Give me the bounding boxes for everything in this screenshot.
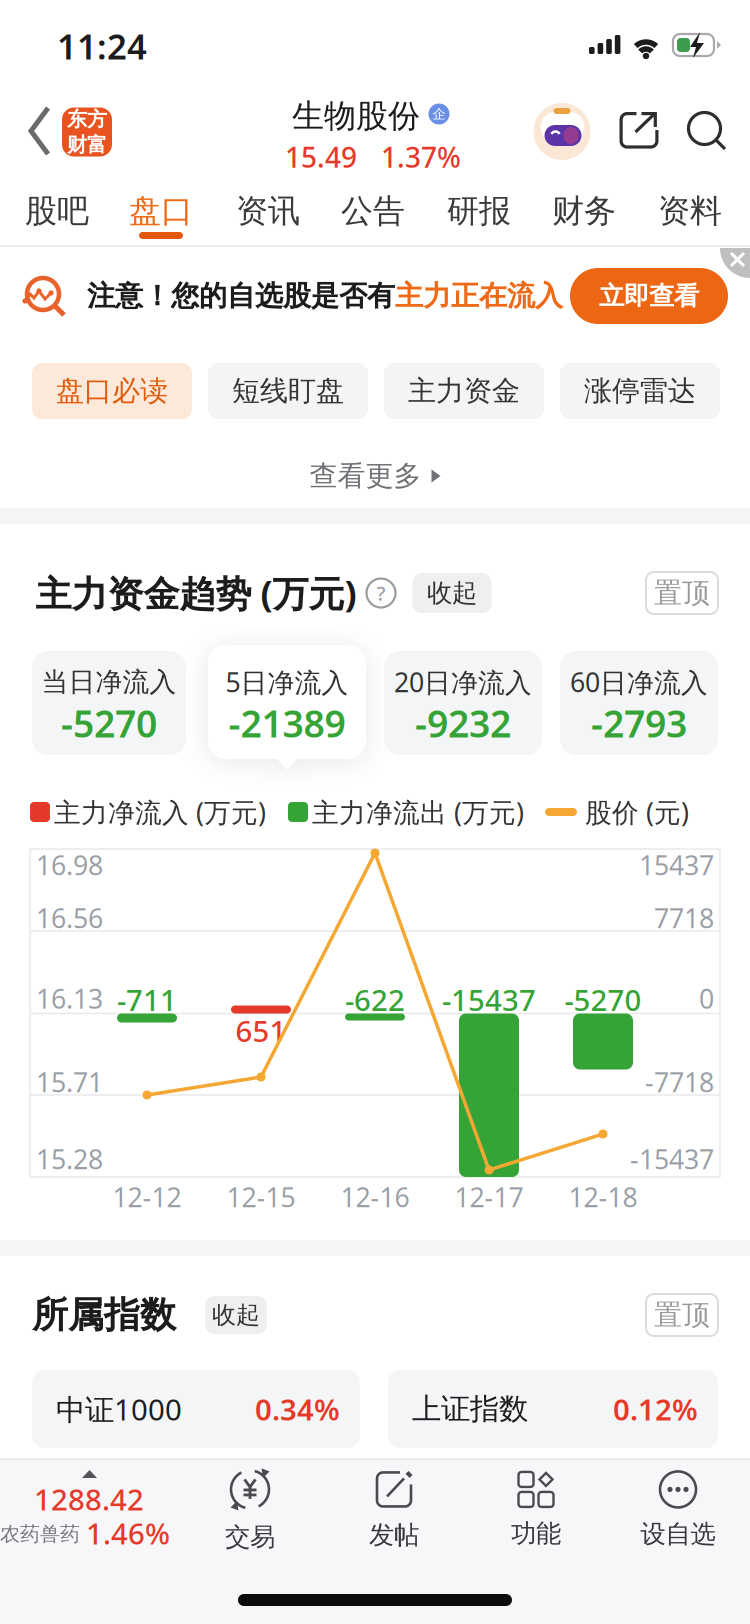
button[interactable]: 资料: [640, 183, 740, 239]
staticText: 16.13: [36, 981, 103, 1016]
staticText: 主力净流入 (万元): [54, 794, 266, 830]
button[interactable]: 东方财富: [62, 107, 112, 156]
button[interactable]: 1288.42: [0, 1460, 178, 1556]
button[interactable]: 公告: [323, 183, 423, 239]
staticText: 涨停雷达: [584, 374, 696, 408]
staticText: 公告: [341, 191, 405, 231]
staticText: 12-12: [112, 1179, 181, 1215]
button[interactable]: 置顶: [645, 1293, 719, 1337]
staticText: 东方: [67, 107, 107, 131]
staticText: 当日净流入: [41, 666, 176, 698]
button[interactable]: 收起: [205, 1296, 267, 1334]
staticText: 60日净流入: [570, 664, 708, 700]
button[interactable]: 盘口: [111, 183, 211, 239]
staticText: -5270: [564, 980, 641, 1019]
button[interactable]: 中证1000: [32, 1370, 360, 1448]
staticText: 农药兽药: [0, 1522, 80, 1546]
staticText: 盘口必读: [56, 374, 168, 408]
staticText: -5270: [61, 698, 157, 748]
staticText: 1.46%: [86, 1513, 170, 1552]
staticText: 主力资金: [408, 374, 520, 408]
button[interactable]: 研报: [429, 183, 529, 239]
button[interactable]: 60日净流入: [560, 651, 718, 767]
button[interactable]: 5日净流入: [208, 651, 366, 767]
staticText: ?: [376, 580, 385, 606]
staticText: -711: [117, 980, 177, 1019]
button[interactable]: 涨停雷达: [560, 363, 720, 419]
button[interactable]: 立即查看: [570, 268, 728, 324]
staticText: -9232: [415, 698, 511, 748]
button[interactable]: 设自选: [613, 1462, 743, 1558]
button[interactable]: 功能: [471, 1462, 601, 1558]
staticText: 盘口: [129, 191, 193, 231]
staticText: 12-16: [340, 1179, 409, 1215]
button[interactable]: 当日净流入: [32, 651, 186, 767]
staticText: 股吧: [25, 191, 89, 231]
staticText: 中证1000: [56, 1389, 182, 1428]
button[interactable]: 盘口必读: [32, 363, 192, 419]
button[interactable]: 主力资金: [384, 363, 544, 419]
button[interactable]: 发帖: [329, 1462, 459, 1558]
staticText: 研报: [447, 191, 511, 231]
staticText: 上证指数: [412, 1391, 528, 1427]
staticText: 11:24: [57, 23, 147, 69]
staticText: 5日净流入: [225, 664, 348, 700]
button[interactable]: 智能助手: [533, 103, 590, 160]
staticText: 查看更多: [309, 459, 421, 493]
staticText: 设自选: [640, 1518, 715, 1549]
staticText: 0.12%: [613, 1389, 698, 1428]
button[interactable]: 收起: [412, 573, 491, 613]
staticText: 企: [432, 106, 445, 122]
staticText: 置顶: [654, 1298, 710, 1332]
staticText: 生物股份: [292, 96, 420, 136]
staticText: 股价 (元): [585, 794, 689, 830]
button[interactable]: 20日净流入: [384, 651, 542, 767]
staticText: 发帖: [369, 1519, 419, 1550]
staticText: 主力正在流入: [395, 279, 563, 313]
button[interactable]: 交易: [185, 1462, 315, 1558]
button[interactable]: 分享: [619, 112, 658, 151]
staticText: 12-15: [226, 1179, 295, 1215]
button[interactable]: 置顶: [645, 571, 719, 615]
staticText: 交易: [225, 1521, 275, 1552]
button[interactable]: 上证指数: [388, 1370, 718, 1448]
staticText: 7718: [654, 900, 714, 936]
staticText: 短线盯盘: [232, 374, 344, 408]
staticText: 16.98: [36, 847, 103, 883]
button[interactable]: 帮助: [366, 578, 396, 608]
staticText: 收起: [212, 1300, 260, 1330]
button[interactable]: 查看更多: [0, 456, 750, 496]
staticText: 财务: [552, 191, 616, 231]
staticText: 12-18: [568, 1179, 637, 1215]
button[interactable]: 返回: [0, 88, 70, 176]
staticText: 15.28: [36, 1141, 103, 1177]
staticText: 1288.42: [34, 1479, 144, 1518]
staticText: 资讯: [236, 191, 300, 231]
staticText: 财富: [67, 132, 107, 157]
staticText: 所属指数: [32, 1293, 176, 1337]
staticText: 15437: [639, 847, 714, 883]
staticText: 20日净流入: [394, 664, 532, 700]
button[interactable]: 财务: [534, 183, 634, 239]
staticText: -21389: [228, 698, 345, 748]
button[interactable]: 短线盯盘: [208, 363, 368, 419]
staticText: 资料: [658, 191, 722, 231]
staticText: -2793: [591, 698, 687, 748]
staticText: 0.34%: [255, 1389, 340, 1428]
staticText: -622: [345, 980, 405, 1019]
staticText: 651: [235, 1011, 286, 1050]
button[interactable]: 资讯: [218, 183, 318, 239]
staticText: 16.56: [36, 900, 103, 936]
staticText: 0: [699, 981, 714, 1016]
staticText: 1.37%: [381, 138, 461, 176]
button[interactable]: 搜索: [687, 111, 727, 151]
staticText: 立即查看: [599, 280, 699, 311]
staticText: -7718: [645, 1064, 714, 1100]
staticText: 15.71: [36, 1064, 103, 1100]
staticText: 主力资金趋势 (万元): [35, 569, 356, 617]
staticText: 功能: [511, 1518, 561, 1549]
staticText: -15437: [630, 1141, 714, 1177]
staticText: 置顶: [654, 576, 710, 610]
button[interactable]: 关闭: [720, 247, 750, 278]
button[interactable]: 股吧: [7, 183, 107, 239]
